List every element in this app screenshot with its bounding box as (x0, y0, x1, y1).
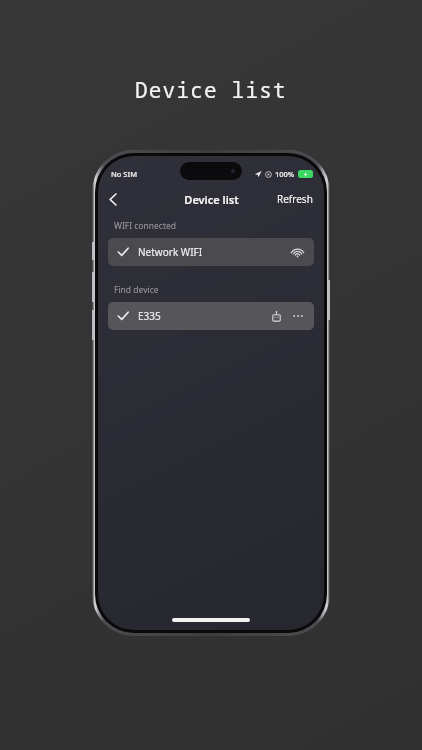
button[interactable]: Network WIFI (108, 238, 314, 266)
staticText: Device list (135, 76, 287, 105)
button[interactable]: Refresh (266, 188, 324, 210)
staticText: Find device (114, 284, 159, 296)
staticText: E335 (138, 309, 161, 323)
button[interactable]: E335 (108, 302, 314, 330)
button[interactable]: Device info (269, 309, 283, 323)
staticText: No SIM (111, 169, 138, 179)
staticText: Device list (184, 192, 239, 207)
button[interactable]: More options (291, 309, 305, 323)
staticText: Network WIFI (138, 245, 203, 259)
button[interactable]: WiFi signal (289, 244, 305, 260)
staticText: WIFI connected (114, 220, 176, 232)
staticText: Refresh (277, 192, 313, 206)
staticText: 100% (275, 169, 295, 179)
button[interactable]: Back (98, 186, 128, 212)
